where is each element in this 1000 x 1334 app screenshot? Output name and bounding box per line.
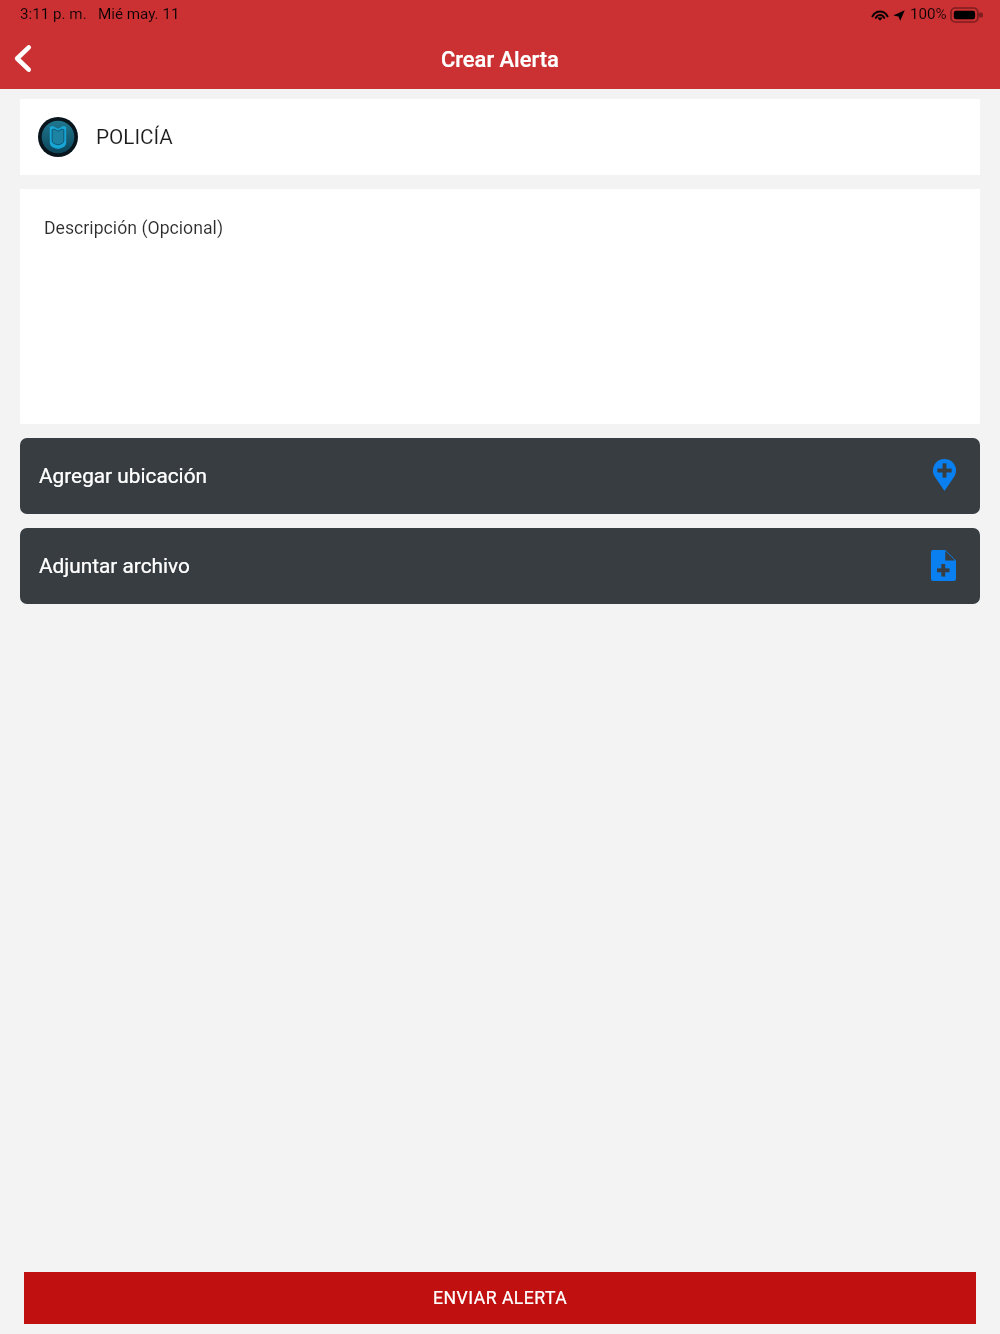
- staticText: Adjuntar archivo: [39, 554, 190, 578]
- staticText: 100%: [910, 5, 947, 23]
- staticText: 3:11 p. m. Mié may. 11: [20, 5, 180, 23]
- staticText: Descripción (Opcional): [44, 218, 224, 239]
- button[interactable]: POLICÍA: [20, 99, 980, 175]
- button[interactable]: Back: [0, 28, 45, 89]
- button[interactable]: Adjuntar archivo: [20, 528, 980, 604]
- staticText: ENVIAR ALERTA: [433, 1288, 568, 1309]
- button[interactable]: ENVIAR ALERTA: [24, 1272, 976, 1324]
- other: Agregar ubicación: [933, 459, 956, 491]
- staticText: Agregar ubicación: [39, 464, 208, 488]
- other: Adjuntar archivo: [931, 550, 956, 581]
- staticText: Crear Alerta: [441, 47, 559, 73]
- button[interactable]: Descripción (Opcional): [20, 189, 980, 424]
- staticText: POLICÍA: [96, 125, 173, 149]
- button[interactable]: Agregar ubicación: [20, 438, 980, 514]
